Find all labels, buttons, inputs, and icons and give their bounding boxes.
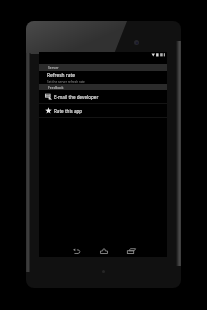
button[interactable]: Refresh rate [39,71,167,84]
button[interactable]: Back [71,246,82,255]
staticText: E-mail the developer [54,94,99,100]
staticText: Set the server refresh rate [47,80,85,84]
staticText: Rate this app [54,108,83,114]
button[interactable]: Recent apps [125,246,137,255]
staticText: Server [48,65,59,69]
button[interactable]: E-mail the developer [39,90,167,103]
staticText: Feedback [48,85,64,89]
staticText: Refresh rate [47,72,75,79]
button[interactable]: Rate this app [39,104,167,117]
button[interactable]: Home [98,246,109,255]
